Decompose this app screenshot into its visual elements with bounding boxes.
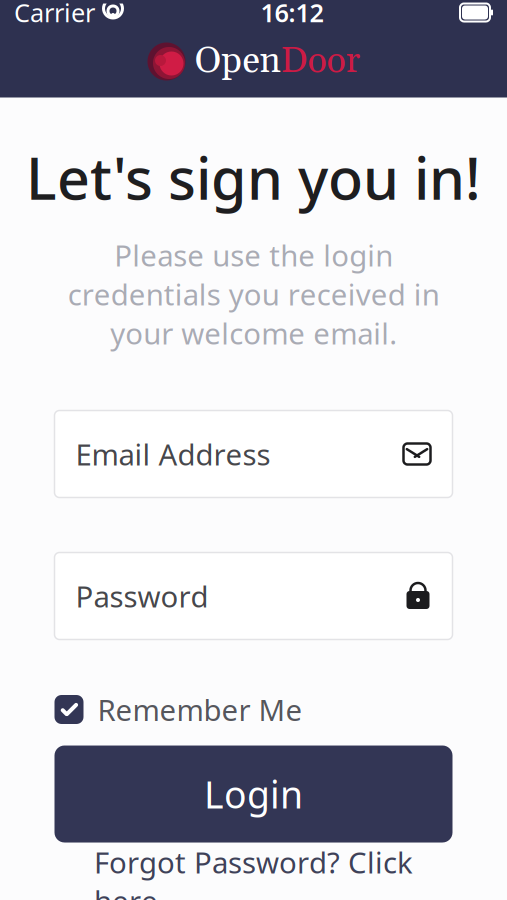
button[interactable]: Password [54, 552, 452, 639]
staticText: Let's sign you in! [26, 139, 481, 216]
button[interactable]: Forgot Password? Click here. [54, 864, 452, 898]
staticText: Email Address [75, 434, 270, 473]
staticText: Door [280, 39, 360, 84]
staticText: Please use the login credentials you rec… [67, 236, 439, 352]
staticText: Password [75, 576, 208, 615]
button[interactable]: Email Address [54, 410, 452, 497]
staticText: Forgot Password? Click here. [94, 842, 413, 900]
staticText: Remember Me [97, 690, 302, 729]
staticText: Open [194, 39, 280, 84]
staticText: Carrier [14, 0, 95, 29]
staticText: 16:12 [260, 0, 323, 29]
button[interactable]: Remember Me [54, 687, 452, 731]
button[interactable]: Login [54, 745, 452, 842]
staticText: Login [204, 769, 303, 819]
